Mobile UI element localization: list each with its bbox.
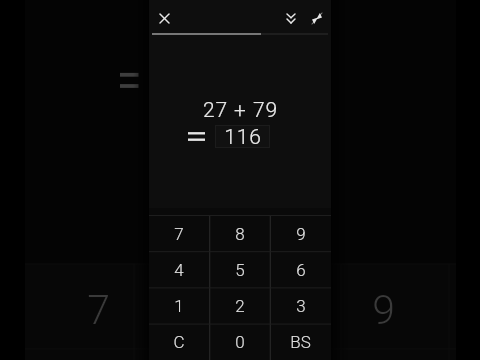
staticText: 5 <box>235 260 245 280</box>
staticText: 9 <box>372 286 395 334</box>
staticText: BS <box>290 332 311 352</box>
staticText: 9 <box>296 224 306 244</box>
staticText: 7 <box>174 224 184 244</box>
button[interactable]: Close <box>152 7 176 30</box>
button[interactable]: 8 <box>209 216 270 252</box>
staticText: 3 <box>296 296 306 316</box>
button[interactable]: 1 <box>149 288 209 324</box>
staticText: 8 <box>235 224 245 244</box>
button[interactable]: BS <box>270 324 331 360</box>
staticText: C <box>173 332 185 352</box>
button[interactable]: 3 <box>270 288 331 324</box>
button[interactable]: 7 <box>149 216 209 252</box>
staticText: 2 <box>235 296 245 316</box>
staticText: 0 <box>235 332 245 352</box>
staticText: 4 <box>174 260 184 280</box>
staticText: 6 <box>296 260 306 280</box>
button[interactable]: C <box>149 324 209 360</box>
staticText: 1 <box>174 296 184 316</box>
button[interactable]: 4 <box>149 252 209 288</box>
button[interactable]: 6 <box>270 252 331 288</box>
button[interactable]: 116 <box>215 125 270 148</box>
staticText: 7 <box>87 286 110 334</box>
button[interactable]: 2 <box>209 288 270 324</box>
button[interactable]: 5 <box>209 252 270 288</box>
button[interactable]: 0 <box>209 324 270 360</box>
button[interactable]: Minimize window <box>306 6 328 30</box>
staticText: 27 + 79 <box>203 98 278 123</box>
button[interactable]: Collapse <box>279 6 302 30</box>
staticText: 116 <box>224 125 262 148</box>
button[interactable]: 9 <box>270 216 331 252</box>
